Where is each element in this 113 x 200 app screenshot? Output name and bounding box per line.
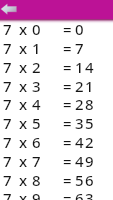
staticText: 2 xyxy=(32,57,41,76)
staticText: 63 xyxy=(75,188,95,200)
staticText: 0 xyxy=(75,19,85,38)
staticText: 6 xyxy=(32,132,41,151)
button[interactable]: 7 xyxy=(0,38,113,57)
staticText: 7 xyxy=(3,94,12,113)
staticText: 5 xyxy=(32,113,41,132)
staticText: = xyxy=(63,132,72,151)
staticText: 7 xyxy=(3,132,12,151)
staticText: 1 xyxy=(32,38,41,57)
staticText: 21 xyxy=(75,76,95,95)
staticText: 28 xyxy=(75,94,95,113)
staticText: = xyxy=(63,19,72,38)
staticText: 7 xyxy=(3,19,12,38)
staticText: 7 xyxy=(32,151,41,170)
staticText: 7 xyxy=(3,151,12,170)
staticText: 14 xyxy=(75,57,95,76)
staticText: 0 xyxy=(32,19,41,38)
button[interactable]: Navigate up xyxy=(0,0,22,18)
staticText: 7 xyxy=(3,76,12,95)
button[interactable]: 7 xyxy=(0,57,113,76)
staticText: = xyxy=(63,170,72,189)
staticText: x xyxy=(19,38,28,57)
staticText: x xyxy=(19,76,28,95)
staticText: x xyxy=(19,132,28,151)
staticText: 35 xyxy=(75,113,95,132)
button[interactable]: 7 xyxy=(0,170,113,189)
staticText: = xyxy=(63,57,72,76)
button[interactable]: 7 xyxy=(0,76,113,95)
staticText: 7 xyxy=(3,38,12,57)
staticText: x xyxy=(19,19,28,38)
staticText: = xyxy=(63,94,72,113)
button[interactable]: 7 xyxy=(0,94,113,113)
staticText: 42 xyxy=(75,132,95,151)
staticText: 3 xyxy=(32,76,41,95)
staticText: 7 xyxy=(3,113,12,132)
staticText: 4 xyxy=(32,94,41,113)
staticText: 7 xyxy=(3,57,12,76)
button[interactable]: 7 xyxy=(0,151,113,170)
staticText: = xyxy=(63,113,72,132)
staticText: x xyxy=(19,188,28,200)
staticText: x xyxy=(19,113,28,132)
staticText: = xyxy=(63,76,72,95)
button[interactable]: 7 xyxy=(0,132,113,151)
staticText: x xyxy=(19,94,28,113)
staticText: 49 xyxy=(75,151,95,170)
button[interactable]: 7 xyxy=(0,19,113,38)
staticText: x xyxy=(19,170,28,189)
staticText: 7 xyxy=(75,38,85,57)
button[interactable]: 7 xyxy=(0,188,113,200)
staticText: = xyxy=(63,151,72,170)
staticText: = xyxy=(63,38,72,57)
staticText: 7 xyxy=(3,188,12,200)
staticText: 56 xyxy=(75,170,95,189)
staticText: 8 xyxy=(32,170,41,189)
staticText: = xyxy=(63,188,72,200)
staticText: 9 xyxy=(32,188,41,200)
staticText: x xyxy=(19,57,28,76)
staticText: x xyxy=(19,151,28,170)
staticText: 7 xyxy=(3,170,12,189)
button[interactable]: 7 xyxy=(0,113,113,132)
